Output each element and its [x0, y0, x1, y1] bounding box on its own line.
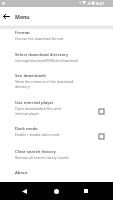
button[interactable]: Recent apps [77, 182, 95, 200]
staticText: About [15, 169, 28, 175]
button[interactable]: Select download directory [0, 48, 113, 66]
staticText: Open downloaded files with internal play… [15, 106, 89, 116]
staticText: Choose the download format [15, 36, 89, 41]
button[interactable]: Use internal player [0, 96, 113, 114]
staticText: Menu [15, 13, 30, 20]
button[interactable]: Back [0, 7, 13, 25]
staticText: Select download directory [15, 51, 69, 57]
button[interactable]: Dark mode [0, 122, 113, 140]
staticText: Enable / disable dark mode [15, 132, 89, 137]
staticText: Use internal player [15, 99, 54, 105]
staticText: 8:41 [96, 1, 105, 7]
button[interactable]: Format [0, 26, 113, 44]
staticText: Show the contents of the download direct… [15, 79, 89, 89]
button[interactable]: Clear search history [0, 145, 113, 163]
staticText: Remove all search history results [15, 155, 89, 160]
staticText: Clear search history [15, 148, 56, 154]
staticText: See downloads [15, 72, 46, 78]
button[interactable]: Back [15, 182, 33, 200]
staticText: Dark mode [15, 125, 38, 131]
button[interactable]: See downloads [0, 69, 113, 87]
staticText: Format [15, 29, 30, 35]
staticText: /storage/emulated/0/Music/download [15, 58, 89, 63]
button[interactable]: Home [47, 182, 65, 200]
button[interactable]: About [0, 166, 113, 184]
